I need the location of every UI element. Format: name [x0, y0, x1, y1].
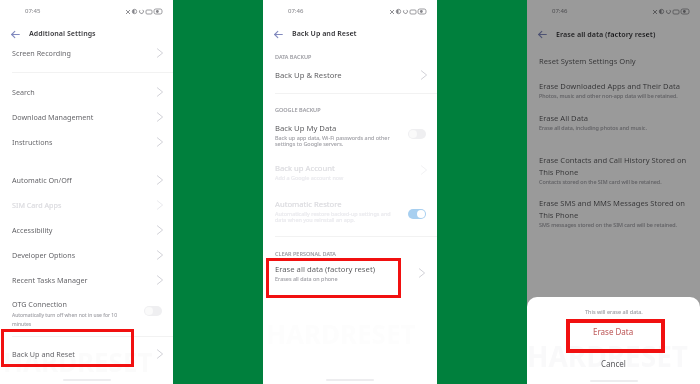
button[interactable]: OTG Connection — [0, 292, 173, 327]
button[interactable]: Erase All Data — [527, 113, 700, 131]
staticText: Automatic Restore — [275, 199, 342, 209]
staticText: Add a Google account now — [275, 174, 344, 181]
staticText: Photos, music and other non-app data wil… — [539, 92, 678, 99]
staticText: 07:45 — [25, 7, 41, 15]
staticText: This will erase all data. — [585, 308, 643, 315]
staticText: OTG Connection — [12, 299, 67, 309]
staticText: Erase All Data — [539, 113, 588, 123]
staticText: Developer Options — [12, 250, 76, 260]
button[interactable]: Accessibility — [0, 217, 173, 242]
staticText: Additional Settings — [29, 29, 96, 39]
button[interactable]: Erase Downloaded Apps and Their Data — [527, 81, 700, 99]
staticText: DATA BACKUP — [275, 53, 312, 60]
staticText: SMS messages stored on the SIM card will… — [539, 221, 677, 228]
button[interactable]: Erase all data (factory reset) — [263, 264, 437, 282]
button[interactable]: Back Up My Data — [263, 123, 437, 148]
staticText: Automatic On/Off — [12, 175, 72, 185]
button[interactable]: Back Up and Reset — [0, 341, 173, 366]
other: Back — [274, 30, 283, 39]
staticText: Back Up and Reset — [12, 349, 75, 359]
button[interactable]: Instructions — [0, 129, 173, 154]
button[interactable]: Back — [7, 26, 23, 42]
button[interactable]: Back up Account — [263, 163, 437, 181]
staticText: Erase all data (factory reset) — [556, 29, 656, 39]
button[interactable]: Erase Data — [527, 319, 700, 343]
staticText: Erase all data (factory reset) — [275, 264, 375, 274]
other: Back — [11, 30, 20, 39]
button[interactable]: Automatic On/Off — [0, 167, 173, 192]
staticText: Search — [12, 87, 35, 97]
button[interactable]: Cancel — [527, 354, 700, 372]
button[interactable]: Screen Recording — [0, 40, 173, 65]
button[interactable]: Search — [0, 79, 173, 104]
button[interactable]: Recent Tasks Manager — [0, 267, 173, 292]
staticText: Accessibility — [12, 225, 53, 235]
staticText: HARDRESET — [527, 337, 688, 375]
staticText: Erase Data — [593, 326, 634, 337]
button[interactable]: Erase SMS and MMS Messages Stored on Thi… — [527, 198, 700, 228]
button[interactable]: Back — [534, 26, 550, 42]
staticText: 07:46 — [288, 7, 304, 15]
button[interactable]: Developer Options — [0, 242, 173, 267]
staticText: Automatically restore backed-up settings… — [275, 210, 402, 224]
staticText: Recent Tasks Manager — [12, 275, 88, 285]
staticText: Cancel — [601, 358, 626, 369]
staticText: GOOGLE BACKUP — [275, 106, 321, 113]
staticText: 07:46 — [552, 7, 568, 15]
staticText: Erase Contacts and Call History Stored o… — [539, 155, 690, 177]
button[interactable]: Toggle — [408, 129, 426, 139]
button[interactable]: Toggle — [408, 209, 426, 219]
button[interactable]: Automatic Restore — [263, 199, 437, 224]
button[interactable]: Reset System Settings Only — [527, 56, 700, 66]
button[interactable]: Back — [270, 26, 286, 42]
staticText: Erase SMS and MMS Messages Stored on Thi… — [539, 198, 690, 220]
staticText: HARDRESET — [3, 344, 153, 379]
staticText: Screen Recording — [12, 48, 71, 58]
staticText: Reset System Settings Only — [539, 56, 636, 66]
button[interactable]: SIM Card Apps — [0, 192, 173, 217]
staticText: CLEAR PERSONAL DATA — [275, 250, 336, 257]
staticText: Back Up and Reset — [292, 29, 357, 39]
button[interactable]: Back Up & Restore — [263, 69, 437, 81]
staticText: Back up Account — [275, 163, 335, 173]
staticText: Contacts stored on the SIM card will be … — [539, 178, 662, 185]
button[interactable]: Erase Contacts and Call History Stored o… — [527, 155, 700, 185]
button[interactable]: Toggle — [144, 306, 162, 316]
button[interactable]: Download Management — [0, 104, 173, 129]
staticText: Back up app data, Wi-Fi passwords and ot… — [275, 134, 402, 148]
other: Back — [538, 30, 547, 39]
staticText: Erase Downloaded Apps and Their Data — [539, 81, 680, 91]
staticText: SIM Card Apps — [12, 200, 62, 210]
staticText: Back Up & Restore — [275, 70, 342, 80]
staticText: Download Management — [12, 112, 94, 122]
staticText: Erase all data, including photos and mus… — [539, 124, 647, 131]
staticText: Back Up My Data — [275, 123, 337, 133]
staticText: Automatically turn off when not in use f… — [12, 312, 136, 327]
staticText: Erases all data on phone — [275, 275, 338, 282]
staticText: Instructions — [12, 137, 53, 147]
